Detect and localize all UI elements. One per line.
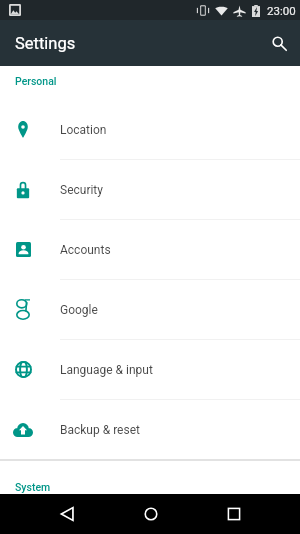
staticText: Accounts — [60, 243, 111, 257]
staticText: Security — [60, 183, 103, 197]
staticText: Backup & reset — [60, 423, 140, 437]
staticText: Google — [60, 303, 98, 317]
staticText: Location — [60, 123, 107, 137]
staticText: Language & input — [60, 363, 153, 377]
button[interactable]: Security — [0, 160, 300, 220]
button[interactable]: Accounts — [0, 220, 300, 280]
staticText: System — [15, 481, 51, 493]
button[interactable]: Language & input — [0, 340, 300, 400]
button[interactable]: Search — [254, 20, 300, 66]
button[interactable]: Location — [0, 100, 300, 160]
button[interactable]: Recents — [192, 494, 275, 534]
staticText: Settings — [15, 34, 76, 53]
button[interactable]: Google — [0, 280, 300, 340]
staticText: Personal — [15, 75, 57, 87]
button[interactable]: Back — [25, 494, 109, 534]
button[interactable]: Backup & reset — [0, 400, 300, 461]
button[interactable]: Home — [109, 494, 192, 534]
staticText: 23:00 — [267, 4, 296, 17]
